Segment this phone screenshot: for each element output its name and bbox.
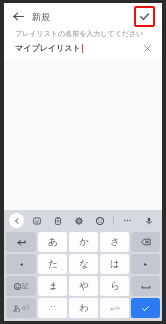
button[interactable]: 右	[131, 254, 160, 274]
staticText: わ	[79, 302, 89, 314]
button[interactable]: は	[100, 254, 129, 274]
staticText: は	[110, 258, 120, 270]
button[interactable]: ら	[100, 276, 129, 296]
button[interactable]: 左	[6, 254, 36, 274]
button[interactable]: 閉じる	[9, 213, 24, 228]
button[interactable]: わ	[69, 298, 98, 318]
button[interactable]: か	[69, 232, 98, 252]
button[interactable]: 元に戻す	[6, 232, 36, 252]
staticText: 記	[22, 282, 29, 290]
staticText: ら	[110, 280, 120, 292]
staticText: や	[79, 280, 89, 292]
button[interactable]: 絵文字記号	[6, 276, 36, 296]
staticText: あ	[13, 303, 22, 313]
button[interactable]: 設定	[71, 213, 86, 228]
button[interactable]: クリップボード	[50, 213, 65, 228]
staticText: か	[79, 236, 89, 248]
button[interactable]: や	[69, 276, 98, 296]
staticText: マイプレイリスト	[15, 43, 81, 53]
button[interactable]: ステッカー	[29, 213, 44, 228]
button[interactable]: 入力モード切替	[6, 298, 36, 318]
button[interactable]: 音声入力	[141, 213, 156, 228]
button[interactable]: 保存	[134, 6, 155, 27]
button[interactable]: スペース	[131, 276, 160, 296]
staticText: 新規	[32, 11, 50, 22]
staticText: た	[48, 258, 58, 270]
button[interactable]: 戻る	[9, 7, 27, 25]
staticText: プレイリストの名前を入力してください	[15, 29, 144, 38]
staticText: さ	[110, 236, 120, 248]
button[interactable]: その他	[120, 213, 135, 228]
button[interactable]: クリア	[140, 41, 154, 55]
button[interactable]: マイプレイリスト	[15, 41, 154, 55]
button[interactable]: ま	[38, 276, 67, 296]
button[interactable]: 顔文字	[38, 298, 67, 318]
button[interactable]: さ	[100, 232, 129, 252]
staticText: ま	[48, 280, 58, 292]
button[interactable]: た	[38, 254, 67, 274]
staticText: a1	[22, 303, 30, 313]
button[interactable]: 確定	[131, 298, 160, 318]
staticText: あ	[48, 236, 58, 248]
button[interactable]: な	[69, 254, 98, 274]
button[interactable]: テーマ	[92, 213, 107, 228]
staticText: な	[79, 258, 89, 270]
button[interactable]: 記号	[100, 298, 129, 318]
button[interactable]: 削除	[131, 232, 160, 252]
button[interactable]: あ	[38, 232, 67, 252]
